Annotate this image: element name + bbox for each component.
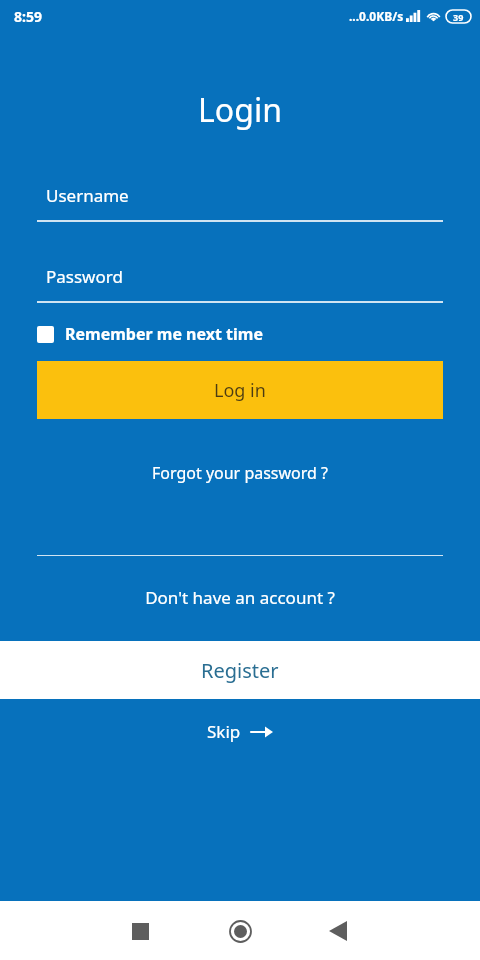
- button[interactable]: Remember me next time: [37, 323, 443, 345]
- staticText: Password: [46, 265, 123, 288]
- staticText: Forgot your password ?: [152, 462, 329, 484]
- button[interactable]: Forgot your password ?: [0, 462, 480, 484]
- button[interactable]: Register: [0, 641, 480, 699]
- staticText: Remember me next time: [65, 323, 263, 345]
- button[interactable]: Home: [216, 907, 264, 955]
- button[interactable]: Recents: [116, 907, 164, 955]
- staticText: Skip: [207, 720, 241, 743]
- staticText: Don't have an account ?: [0, 586, 480, 609]
- staticText: ...0.0KB/s: [349, 8, 404, 24]
- staticText: Login: [0, 88, 480, 132]
- button[interactable]: Skip: [0, 720, 480, 743]
- button[interactable]: Log in: [37, 361, 443, 419]
- staticText: 8:59: [14, 7, 42, 26]
- button[interactable]: Back: [314, 907, 362, 955]
- staticText: Log in: [214, 378, 266, 403]
- staticText: Register: [201, 657, 279, 684]
- staticText: Username: [46, 184, 129, 207]
- button[interactable]: Username: [37, 184, 443, 222]
- button[interactable]: Password: [37, 265, 443, 303]
- staticText: 39: [453, 11, 464, 23]
